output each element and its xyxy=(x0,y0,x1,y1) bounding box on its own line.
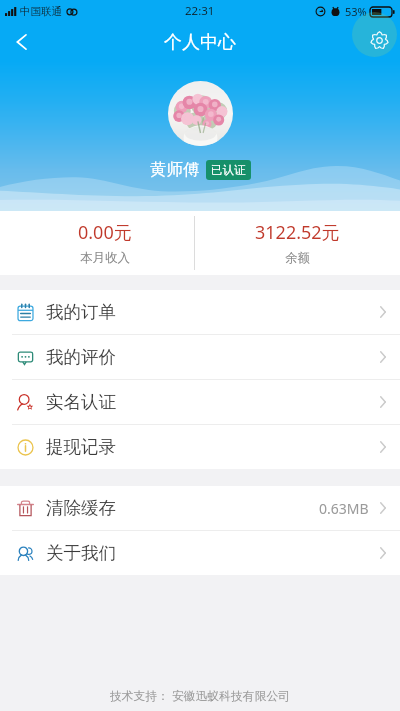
staticText: 22:31 xyxy=(185,3,215,19)
staticText: 提现记录 xyxy=(46,436,116,458)
staticText: 我的订单 xyxy=(46,301,116,323)
button[interactable]: 清除缓存 xyxy=(0,486,400,530)
staticText: 本月收入 xyxy=(80,250,130,266)
staticText: 黄师傅 xyxy=(150,159,200,180)
staticText: 余额 xyxy=(285,250,310,266)
staticText: 53% xyxy=(345,4,367,19)
staticText: 实名认证 xyxy=(46,391,116,413)
button[interactable]: Back xyxy=(6,26,38,58)
staticText: 个人中心 xyxy=(164,31,236,54)
button[interactable]: 关于我们 xyxy=(0,531,400,575)
button[interactable]: 0.00元 xyxy=(0,211,194,275)
staticText: 0.63MB xyxy=(319,499,369,518)
staticText: 中国联通 xyxy=(20,5,62,18)
staticText: 3122.52元 xyxy=(255,220,340,245)
button[interactable]: 我的订单 xyxy=(0,290,400,334)
staticText: 技术支持： 安徽迅蚁科技有限公司 xyxy=(110,687,291,703)
staticText: 已认证 xyxy=(211,163,246,177)
staticText: 清除缓存 xyxy=(46,497,116,519)
button[interactable]: 提现记录 xyxy=(0,425,400,469)
button[interactable]: 我的评价 xyxy=(0,335,400,379)
staticText: 我的评价 xyxy=(46,346,116,368)
button[interactable]: 3122.52元 xyxy=(195,211,400,275)
button[interactable]: Settings xyxy=(352,12,397,57)
button[interactable]: 实名认证 xyxy=(0,380,400,424)
staticText: 0.00元 xyxy=(78,220,132,245)
staticText: 关于我们 xyxy=(46,542,116,564)
